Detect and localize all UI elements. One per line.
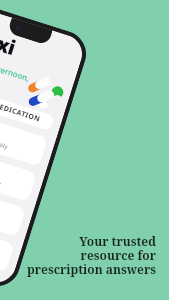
button[interactable]: Lisinopril [0,108,48,167]
staticText: Your trusted resource for prescription a… [27,233,156,278]
button[interactable]: + ADD MEDICATION [0,86,55,131]
staticText: 10 mg · Once daily [0,127,10,151]
button[interactable]: Atorvastatin [0,179,26,237]
button[interactable]: Metformin [0,144,37,202]
staticText: 500 mg · Twice daily [0,162,2,188]
staticText: Good afternoon, [0,54,32,84]
button[interactable]: Sertraline [0,214,15,272]
staticText: Lexi [0,23,19,61]
staticText: + ADD MEDICATION [0,92,42,125]
